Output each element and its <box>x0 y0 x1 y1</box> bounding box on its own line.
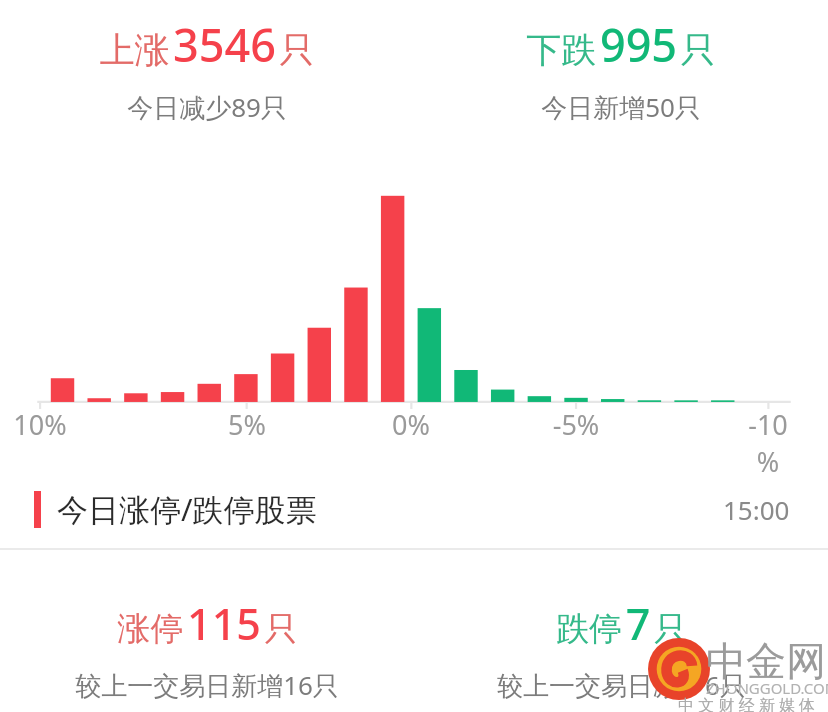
staticText: 今日涨停/跌停股票 <box>57 488 317 530</box>
button[interactable]: 涨停 115 只 <box>0 568 414 712</box>
staticText: 中金网 <box>706 636 826 686</box>
staticText: 15:00 <box>723 492 790 527</box>
staticText: 今日减少89只 <box>127 89 287 125</box>
staticText: 中 文 财 经 新 媒 体 <box>678 694 815 712</box>
staticText: 较上一交易日减少6只 <box>497 667 746 703</box>
button[interactable]: 下跌 995 只 <box>414 0 828 132</box>
staticText: 今日新增50只 <box>541 89 701 125</box>
staticText: -5% <box>546 406 606 443</box>
staticText: 跌停 7 只 <box>556 594 687 653</box>
staticText: 较上一交易日新增16只 <box>75 667 339 703</box>
button[interactable]: 上涨 3546 只 <box>0 0 414 132</box>
staticText: 涨停 115 只 <box>117 594 298 653</box>
staticText: 0% <box>381 406 441 443</box>
staticText: 5% <box>217 406 277 443</box>
staticText: -10% <box>738 406 798 480</box>
staticText: ZHONGGOLD.COM.CN <box>706 678 828 698</box>
staticText: 下跌 995 只 <box>526 14 716 75</box>
button[interactable]: 跌停 7 只 <box>414 568 828 712</box>
staticText: 上涨 3546 只 <box>99 14 315 75</box>
button[interactable]: 今日涨停/跌停股票 <box>0 470 828 548</box>
staticText: 10% <box>10 406 70 443</box>
